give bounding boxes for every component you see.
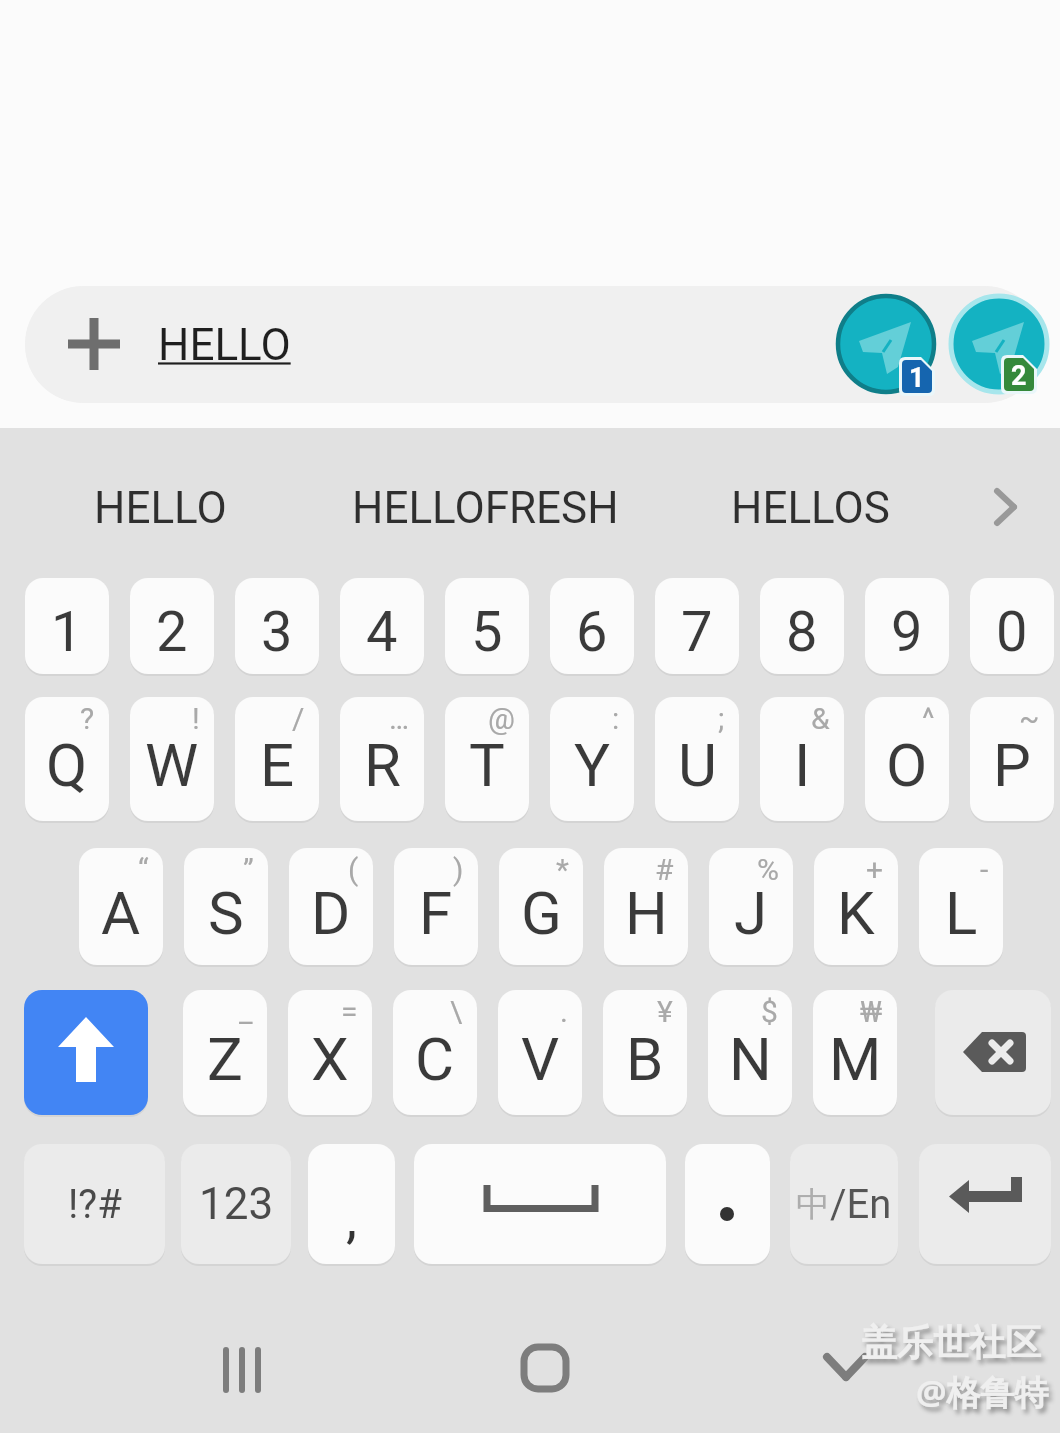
staticText: HELLO: [158, 319, 291, 371]
staticText: V: [521, 1024, 560, 1094]
staticText: +: [866, 852, 884, 887]
staticText: W: [145, 730, 199, 800]
button[interactable]: 8: [760, 578, 844, 674]
button[interactable]: P: [970, 697, 1054, 821]
staticText: ,: [346, 1185, 358, 1251]
button[interactable]: 6: [550, 578, 634, 674]
button[interactable]: HELLO: [60, 470, 260, 546]
button[interactable]: 中: [790, 1144, 898, 1264]
button[interactable]: 123: [181, 1144, 291, 1264]
staticText: L: [945, 878, 978, 948]
staticText: 1: [909, 362, 925, 394]
button[interactable]: [919, 1144, 1051, 1264]
staticText: B: [626, 1024, 664, 1094]
button[interactable]: Y: [550, 697, 634, 821]
staticText: 3: [261, 599, 293, 665]
staticText: Z: [207, 1024, 243, 1094]
staticText: “: [138, 852, 149, 887]
button[interactable]: HELLOS: [690, 470, 930, 546]
button[interactable]: [935, 990, 1051, 1115]
staticText: O: [886, 730, 928, 800]
staticText: R: [364, 730, 401, 800]
button[interactable]: 2: [130, 578, 214, 674]
button[interactable]: 3: [235, 578, 319, 674]
staticText: H: [625, 878, 668, 948]
staticText: G: [521, 878, 562, 948]
button[interactable]: D: [289, 848, 373, 965]
button[interactable]: Q: [25, 697, 109, 821]
staticText: A: [101, 878, 141, 948]
staticText: 2: [1011, 360, 1027, 392]
staticText: T: [469, 730, 505, 800]
staticText: #: [655, 852, 674, 887]
button[interactable]: V: [498, 990, 582, 1115]
button[interactable]: ,: [308, 1144, 395, 1264]
button[interactable]: H: [604, 848, 688, 965]
button[interactable]: [990, 487, 1020, 527]
button[interactable]: 1: [25, 578, 109, 674]
button[interactable]: T: [445, 697, 529, 821]
staticText: 123: [199, 1178, 274, 1230]
button[interactable]: 0: [970, 578, 1054, 674]
staticText: 6: [576, 599, 608, 665]
button[interactable]: U: [655, 697, 739, 821]
staticText: _: [239, 994, 253, 1029]
button[interactable]: N: [708, 990, 792, 1115]
button[interactable]: HELLO: [25, 286, 1043, 403]
button[interactable]: B: [603, 990, 687, 1115]
button[interactable]: O: [865, 697, 949, 821]
staticText: 1: [51, 599, 83, 665]
staticText: =: [341, 994, 358, 1029]
staticText: 中: [796, 1183, 830, 1226]
staticText: E: [260, 730, 295, 800]
button[interactable]: C: [393, 990, 477, 1115]
button[interactable]: [949, 294, 1049, 394]
staticText: I: [794, 730, 811, 800]
staticText: !?#: [68, 1181, 122, 1228]
staticText: 8: [786, 599, 818, 665]
button[interactable]: R: [340, 697, 424, 821]
staticText: -: [980, 852, 989, 887]
button[interactable]: 4: [340, 578, 424, 674]
button[interactable]: [24, 990, 148, 1115]
button[interactable]: W: [130, 697, 214, 821]
button[interactable]: [685, 1144, 770, 1264]
button[interactable]: E: [235, 697, 319, 821]
staticText: @: [488, 701, 515, 736]
button[interactable]: !?#: [24, 1144, 165, 1264]
staticText: ”: [243, 852, 254, 887]
staticText: N: [729, 1024, 772, 1094]
button[interactable]: L: [919, 848, 1003, 965]
button[interactable]: X: [288, 990, 372, 1115]
staticText: 5: [471, 599, 503, 665]
button[interactable]: 9: [865, 578, 949, 674]
button[interactable]: HELLOFRESH: [335, 470, 635, 546]
button[interactable]: G: [499, 848, 583, 965]
button[interactable]: A: [79, 848, 163, 965]
staticText: S: [208, 878, 244, 948]
button[interactable]: K: [814, 848, 898, 965]
button[interactable]: [836, 294, 936, 394]
button[interactable]: I: [760, 697, 844, 821]
staticText: /En: [830, 1181, 892, 1228]
button[interactable]: S: [184, 848, 268, 965]
button[interactable]: 7: [655, 578, 739, 674]
staticText: !: [192, 701, 200, 736]
button[interactable]: M: [813, 990, 897, 1115]
button[interactable]: 5: [445, 578, 529, 674]
staticText: …: [389, 701, 410, 736]
staticText: D: [311, 878, 351, 948]
button[interactable]: [818, 1340, 874, 1396]
staticText: HELLOS: [731, 482, 890, 534]
button[interactable]: [516, 1340, 572, 1396]
button[interactable]: Z: [183, 990, 267, 1115]
staticText: (: [348, 852, 359, 887]
staticText: F: [419, 878, 453, 948]
staticText: &: [811, 701, 830, 736]
button[interactable]: J: [709, 848, 793, 965]
staticText: ~: [1019, 701, 1040, 736]
button[interactable]: F: [394, 848, 478, 965]
button[interactable]: [68, 318, 120, 370]
button[interactable]: [414, 1144, 666, 1264]
button[interactable]: [213, 1340, 273, 1396]
